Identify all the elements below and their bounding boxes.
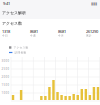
staticText: 今日 bbox=[2, 34, 8, 37]
staticText: アクセス解析 bbox=[2, 10, 26, 15]
staticText: 8681 bbox=[58, 29, 66, 34]
staticText: 1000 bbox=[1, 91, 9, 95]
staticText: 9:41 bbox=[3, 1, 10, 6]
staticText: 2000 bbox=[1, 75, 9, 79]
staticText: 2500 bbox=[1, 67, 9, 71]
staticText: 累計 bbox=[86, 34, 92, 37]
staticText: 261290 bbox=[86, 29, 98, 34]
staticText: 3000 bbox=[1, 59, 9, 63]
staticText: ▮▮▮ bbox=[91, 1, 97, 6]
staticText: 今週 bbox=[30, 34, 36, 37]
staticText: 1500 bbox=[1, 83, 9, 87]
staticText: 訪問者数 bbox=[14, 51, 26, 54]
staticText: 1318 bbox=[2, 29, 10, 34]
staticText: アクセス数 bbox=[2, 21, 22, 26]
staticText: 8681 bbox=[30, 29, 38, 34]
staticText: 今月 bbox=[58, 34, 64, 37]
staticText: アクセス数 bbox=[13, 46, 28, 49]
